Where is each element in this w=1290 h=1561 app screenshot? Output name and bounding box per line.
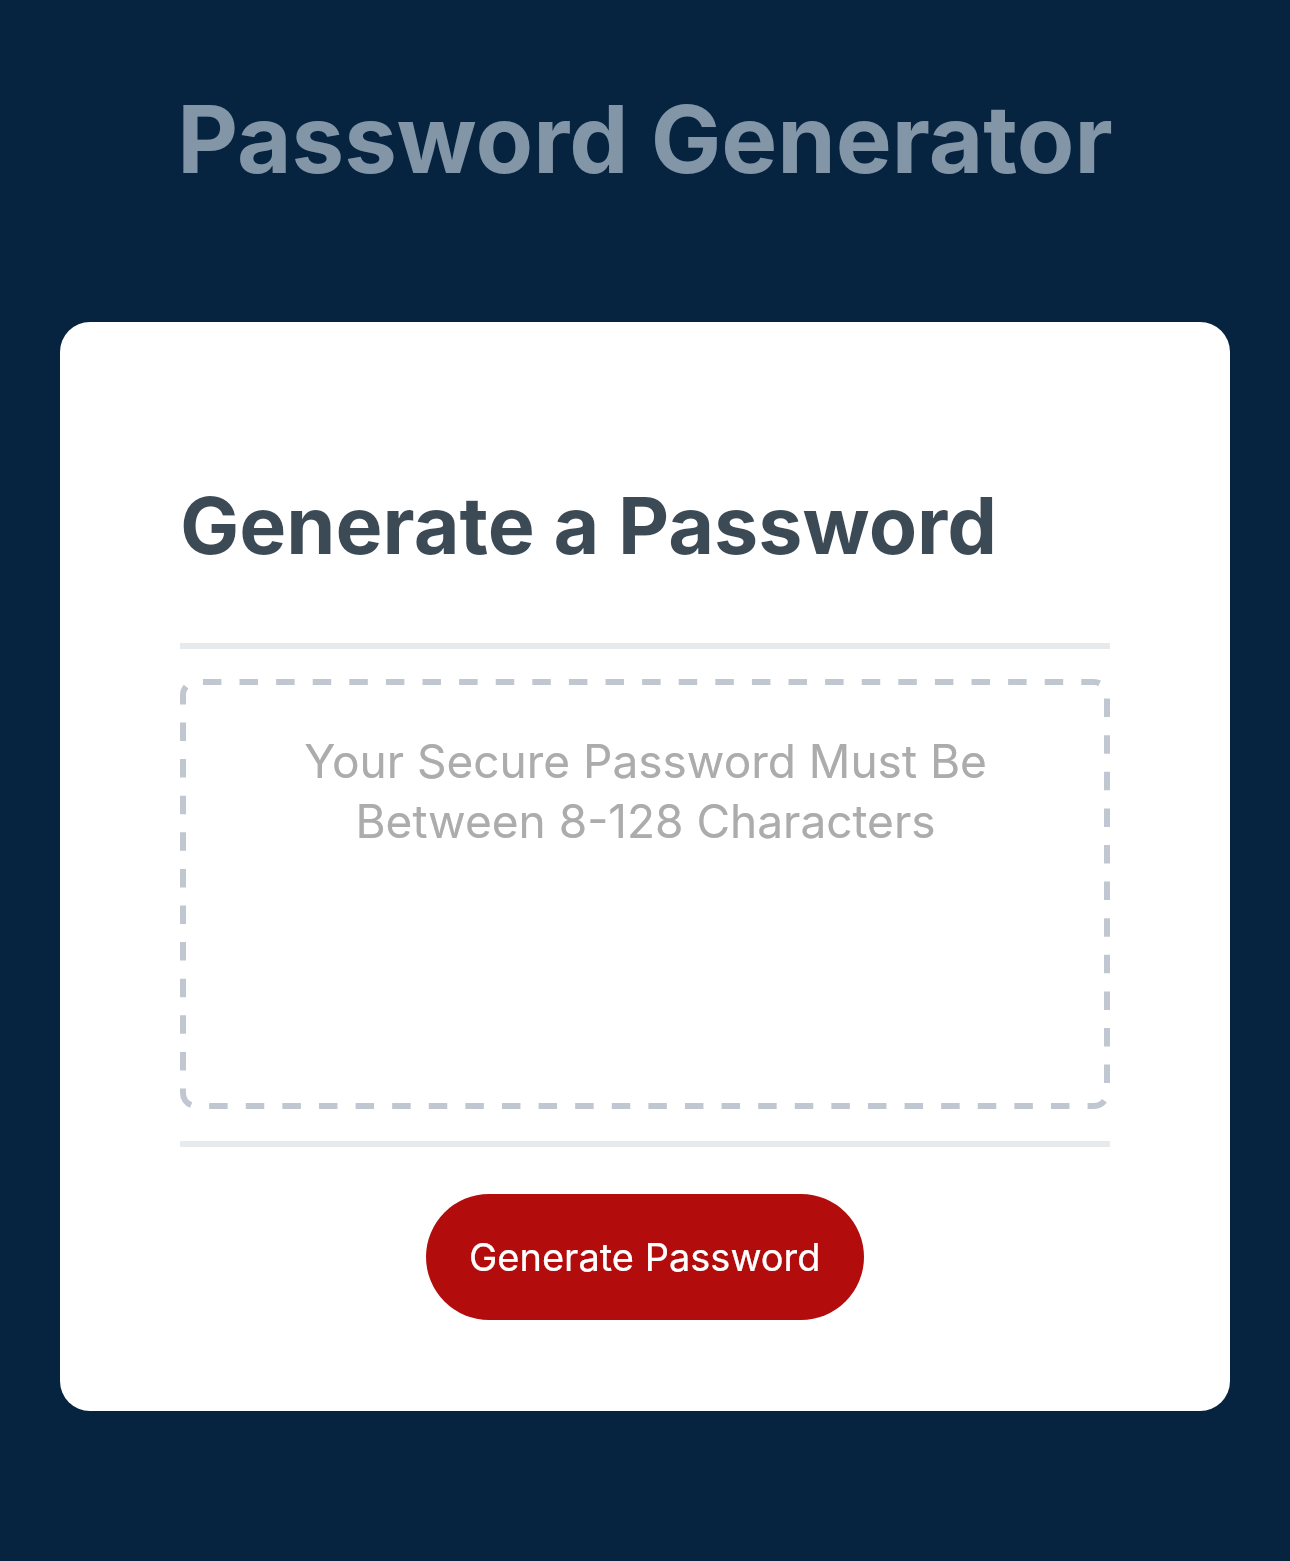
- staticText: Generate Password: [469, 1234, 821, 1280]
- staticText: Your Secure Password Must Be Between 8-1…: [304, 733, 987, 849]
- button[interactable]: Generate Password: [426, 1194, 864, 1320]
- staticText: Password Generator: [0, 82, 1290, 196]
- staticText: Generate a Password: [180, 477, 998, 573]
- button[interactable]: Generated password output field: [180, 679, 1110, 1109]
